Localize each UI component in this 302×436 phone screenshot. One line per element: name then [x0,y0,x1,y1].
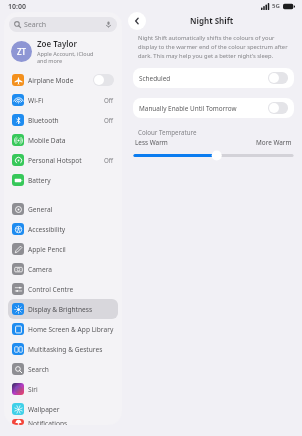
button[interactable]: Airplane Mode [8,70,118,90]
button[interactable]: Search [8,359,118,379]
button[interactable]: Siri [8,379,118,399]
staticText: and more [37,57,63,64]
staticText: ZT [17,46,27,57]
staticText: Apple Pencil [28,245,66,254]
button[interactable]: Manually Enable Until Tomorrow [133,98,294,118]
staticText: Zoe Taylor [37,38,77,49]
button[interactable]: Wallpaper [8,399,118,419]
staticText: Colour Temperature [138,128,197,136]
staticText: More Warm [256,138,292,147]
staticText: Wi-Fi [28,96,44,105]
staticText: Display & Brightness [28,305,93,314]
staticText: Accessibility [28,225,66,234]
button[interactable]: Scheduled [133,68,294,88]
button[interactable]: Control Centre [8,279,118,299]
button[interactable]: Bluetooth [8,110,118,130]
staticText: Apple Account, iCloud [37,50,94,57]
staticText: Scheduled [139,74,171,83]
button[interactable]: Camera [8,259,118,279]
staticText: 5G [272,2,280,10]
staticText: Siri [28,385,38,394]
staticText: Bluetooth [28,116,59,125]
button[interactable]: Mobile Data [8,130,118,150]
staticText: Multitasking & Gestures [28,345,103,354]
staticText: Notifications [28,419,68,425]
staticText: Off [104,156,114,164]
staticText: Search [28,365,49,374]
staticText: Wallpaper [28,405,60,414]
staticText: Night Shift [190,15,234,26]
staticText: Mobile Data [28,136,66,145]
staticText: Manually Enable Until Tomorrow [139,104,237,113]
button[interactable]: Accessibility [8,219,118,239]
button[interactable]: Battery [8,170,118,190]
staticText: Battery [28,176,51,185]
staticText: Off [104,116,114,124]
button[interactable]: Notifications [8,419,118,425]
staticText: Off [104,96,114,104]
staticText: Search [24,20,47,30]
staticText: Night Shift automatically shifts the col… [138,34,288,60]
button[interactable]: ZT [9,37,117,65]
button[interactable]: Search [9,17,117,32]
staticText: Control Centre [28,285,74,294]
button[interactable]: Wi-Fi [8,90,118,110]
button[interactable]: Multitasking & Gestures [8,339,118,359]
button[interactable]: Home Screen & App Library [8,319,118,339]
button[interactable]: General [8,199,118,219]
button[interactable]: Colour temperature slider [133,150,294,161]
staticText: Personal Hotspot [28,156,82,165]
button[interactable]: Airplane Mode toggle [93,74,114,86]
button[interactable]: Manually Enable Until Tomorrow toggle [268,102,288,114]
staticText: Less Warm [135,138,168,147]
staticText: Camera [28,265,53,274]
staticText: 10:00 [8,2,26,12]
button[interactable]: Scheduled toggle [268,72,288,84]
button[interactable]: Display & Brightness [8,299,118,319]
staticText: General [28,205,53,214]
button[interactable]: Apple Pencil [8,239,118,259]
staticText: Airplane Mode [28,76,74,85]
staticText: Home Screen & App Library [28,325,114,334]
button[interactable]: Personal Hotspot [8,150,118,170]
button[interactable]: Back [128,12,146,30]
